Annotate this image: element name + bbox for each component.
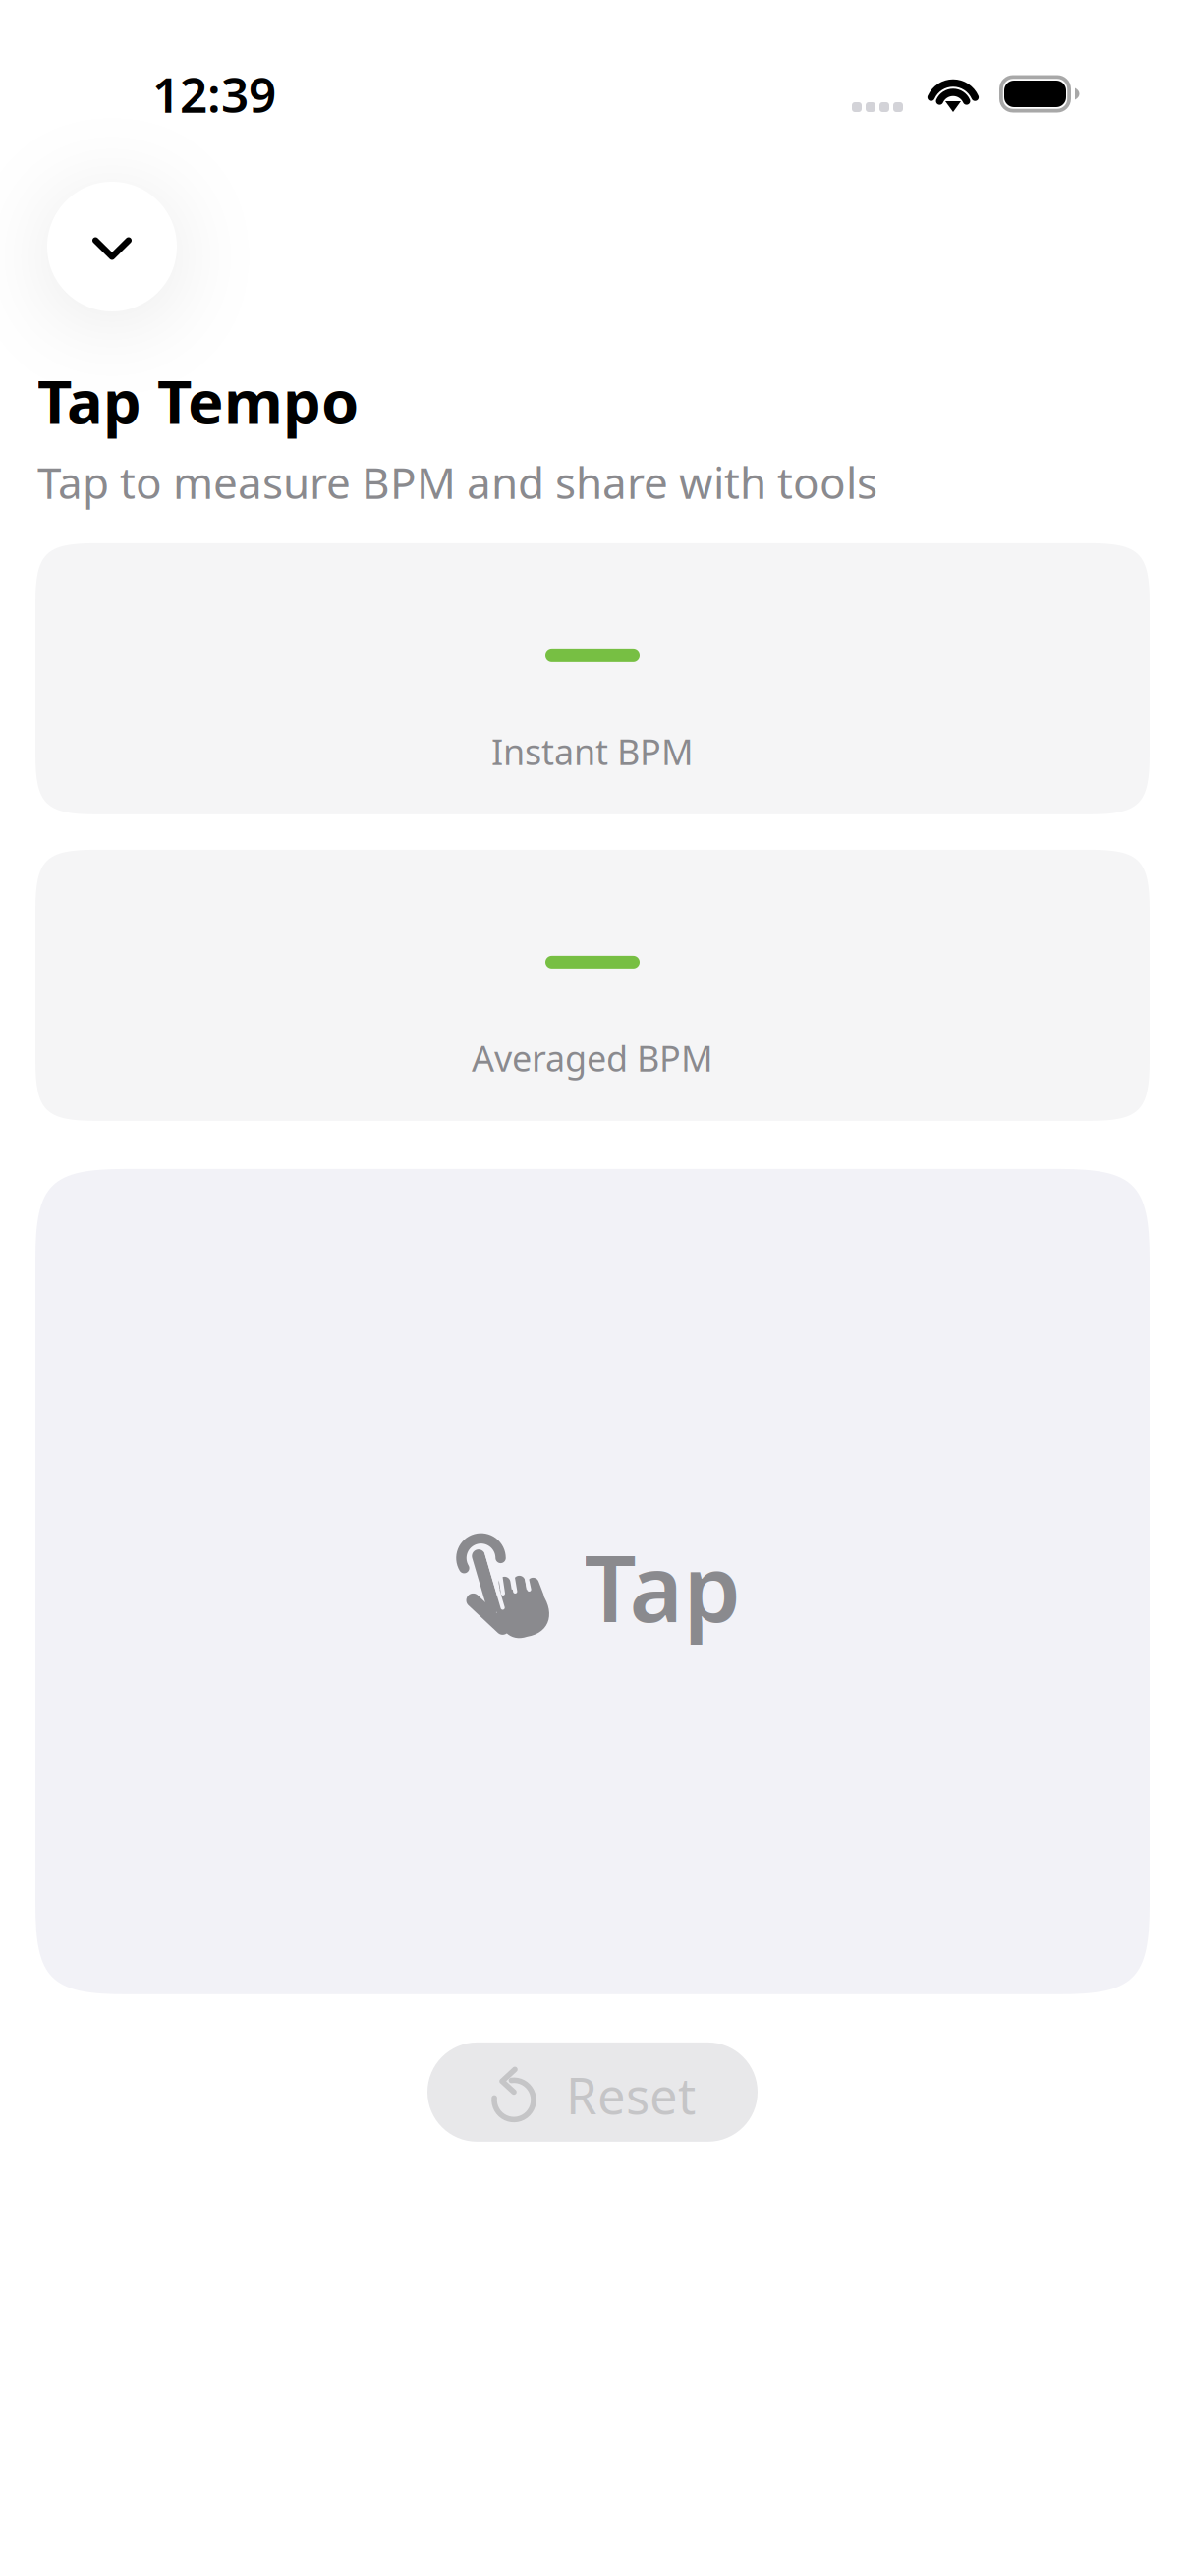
- staticText: Tap Tempo: [37, 361, 359, 441]
- staticText: 12:39: [152, 62, 276, 126]
- staticText: Reset: [566, 2062, 696, 2128]
- button[interactable]: Tap: [35, 1169, 1150, 1994]
- staticText: Instant BPM: [491, 728, 694, 775]
- staticText: Tap to measure BPM and share with tools: [37, 453, 877, 511]
- button[interactable]: Dismiss: [47, 182, 177, 311]
- staticText: Averaged BPM: [472, 1034, 713, 1081]
- button[interactable]: Reset: [427, 2042, 758, 2142]
- staticText: Tap: [584, 1526, 740, 1647]
